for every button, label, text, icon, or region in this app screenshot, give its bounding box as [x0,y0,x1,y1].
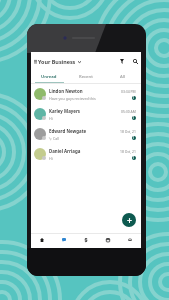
button[interactable]: Lindon Newton [31,84,141,104]
staticText: Hi [49,116,53,121]
staticText: Have you guys recieved this [49,96,96,101]
button[interactable]: Edward Newgate [31,124,141,144]
staticText: 18 Oct, 21 [120,129,136,134]
staticText: 03:34 PM [121,89,136,94]
staticText: 1 [133,136,135,140]
staticText: Lindon Newton [49,88,83,94]
button[interactable]: Daniel Arriaga [31,144,141,164]
button[interactable]: Payments [75,234,97,248]
staticText: 1 [133,156,135,160]
button[interactable]: Unread [31,71,67,83]
button[interactable]: Karley Mayers [31,104,141,124]
staticText: Hi [49,156,53,161]
button[interactable]: Calendar [97,234,119,248]
staticText: All [120,74,126,80]
button[interactable]: All [104,71,141,83]
staticText: Your Business [38,58,76,65]
button[interactable]: Your Business [34,52,81,71]
staticText: Call [53,136,60,141]
staticText: Recent [79,74,93,80]
button[interactable]: Home [31,234,53,248]
button[interactable]: New message [122,213,136,227]
staticText: Karley Mayers [49,108,81,114]
staticText: Unread [41,74,57,80]
button[interactable]: Filter [116,52,127,71]
staticText: Daniel Arriaga [49,148,81,154]
staticText: 18 Oct, 21 [120,149,136,154]
staticText: 1 [133,116,135,120]
staticText: Edward Newgate [49,128,87,134]
staticText: 05:30 AM [121,109,136,114]
button[interactable]: Contacts [119,234,141,248]
button[interactable]: Messages [53,234,75,248]
button[interactable]: Search [130,52,141,71]
staticText: 1 [133,96,135,100]
button[interactable]: Recent [67,71,104,83]
